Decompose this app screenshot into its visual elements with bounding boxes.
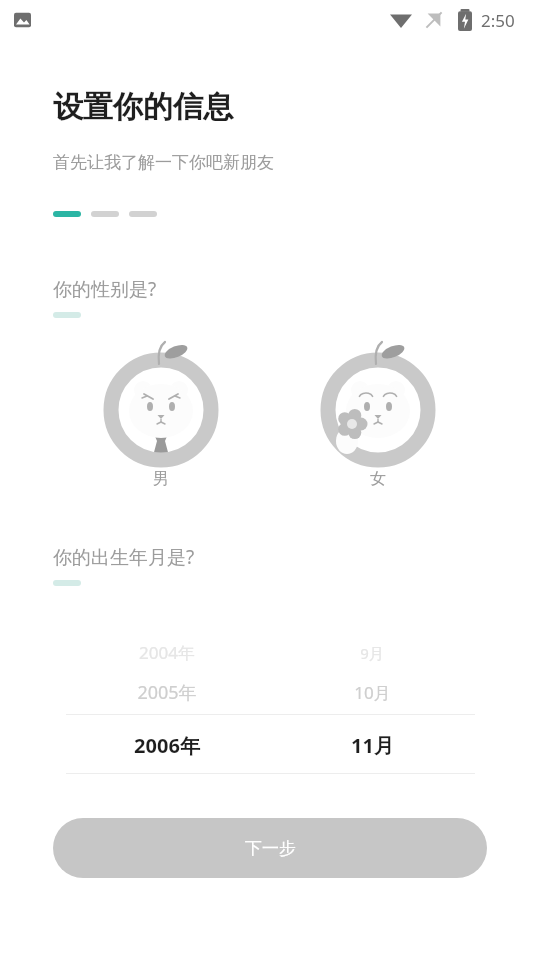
staticText: 10月 [354,681,391,704]
button[interactable]: 9月 [312,638,432,668]
staticText: 你的性别是? [53,276,157,302]
staticText: 你的出生年月是? [53,544,195,570]
staticText: 9月 [360,643,384,663]
staticText: 2:50 [481,9,515,32]
button[interactable]: 2006年 [107,730,227,760]
staticText: 下一步 [245,838,296,859]
staticText: 2006年 [134,732,200,759]
staticText: 2005年 [137,680,197,705]
button[interactable]: 11月 [312,730,432,760]
button[interactable]: 2004年 [107,637,227,667]
staticText: 首先让我了解一下你吧新朋友 [53,152,274,173]
button[interactable]: Female [313,347,443,497]
button[interactable]: 10月 [312,677,432,707]
staticText: 11月 [351,732,394,759]
button[interactable]: 2005年 [107,677,227,707]
button[interactable]: Male [96,347,226,497]
staticText: 男 [153,469,169,489]
button[interactable]: 下一步 [53,818,487,878]
staticText: 女 [370,469,386,489]
staticText: 设置你的信息 [53,88,233,126]
staticText: 2004年 [139,641,195,664]
